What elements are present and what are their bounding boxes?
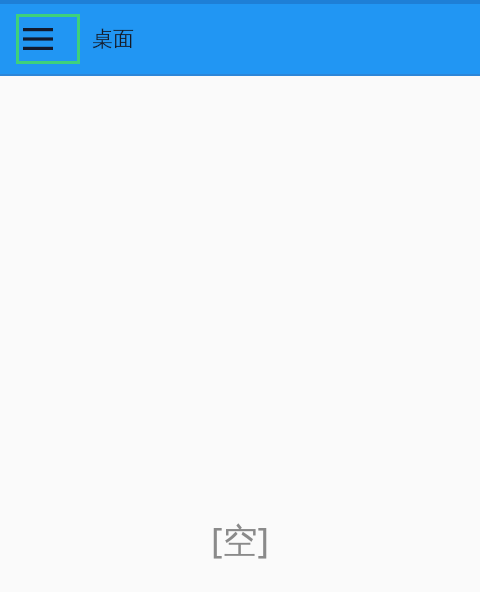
staticText: 桌面: [92, 26, 134, 52]
staticText: [空]: [0, 516, 480, 564]
button[interactable]: Open navigation drawer: [16, 14, 80, 64]
